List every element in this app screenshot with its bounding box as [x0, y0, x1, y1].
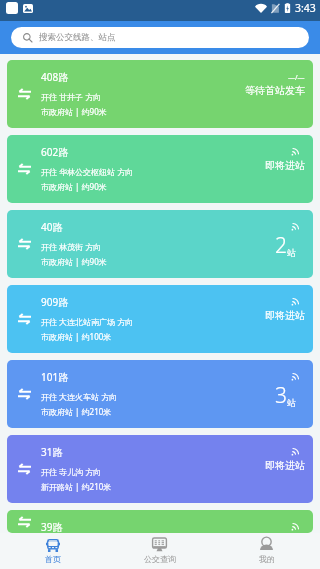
staticText: 市政府站 | 约90米: [41, 106, 107, 117]
staticText: 即将进站: [265, 459, 305, 472]
staticText: 3: [275, 381, 287, 410]
button[interactable]: 101路: [7, 360, 313, 428]
staticText: 新开路站 | 约210米: [41, 481, 112, 492]
staticText: 市政府站 | 约90米: [41, 181, 107, 192]
button[interactable]: 40路: [7, 210, 313, 278]
button[interactable]: 公交查询: [106, 533, 213, 569]
staticText: 开往 甘井子 方向: [41, 91, 102, 102]
staticText: 市政府站 | 约210米: [41, 406, 112, 417]
staticText: 站: [287, 247, 296, 258]
staticText: —/—: [288, 73, 305, 80]
staticText: 我的: [259, 554, 275, 564]
button[interactable]: 408路: [7, 60, 313, 128]
staticText: 39路: [41, 520, 63, 533]
staticText: 开往 华林公交枢纽站 方向: [41, 166, 134, 177]
staticText: 909路: [41, 295, 69, 309]
staticText: 站: [287, 397, 296, 408]
staticText: 开往 大连北站南广场 方向: [41, 316, 134, 327]
staticText: 等待首站发车: [245, 84, 305, 97]
staticText: 2: [275, 231, 287, 260]
button[interactable]: 31路: [7, 435, 313, 503]
staticText: 即将进站: [265, 159, 305, 172]
staticText: 408路: [41, 70, 69, 84]
button[interactable]: 我的: [213, 533, 320, 569]
staticText: 602路: [41, 145, 69, 159]
button[interactable]: 首页: [0, 533, 106, 569]
staticText: 公交查询: [144, 554, 176, 564]
staticText: 101路: [41, 370, 69, 384]
staticText: 开往 寺儿沟 方向: [41, 466, 102, 477]
staticText: 开往 林茂街 方向: [41, 241, 102, 252]
staticText: 开往 大连火车站 方向: [41, 391, 118, 402]
staticText: 即将进站: [265, 309, 305, 322]
button[interactable]: 39路: [7, 510, 313, 533]
staticText: 40路: [41, 220, 63, 234]
button[interactable]: 909路: [7, 285, 313, 353]
staticText: 市政府站 | 约90米: [41, 256, 107, 267]
staticText: 市政府站 | 约100米: [41, 331, 112, 342]
staticText: 首页: [45, 554, 61, 564]
staticText: 搜索公交线路、站点: [39, 32, 116, 43]
button[interactable]: 搜索公交线路、站点: [11, 27, 309, 48]
button[interactable]: 602路: [7, 135, 313, 203]
staticText: 3:43: [295, 1, 316, 15]
staticText: 31路: [41, 445, 63, 459]
